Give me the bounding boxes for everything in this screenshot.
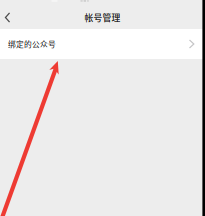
- button[interactable]: 绑定的公众号: [0, 29, 205, 59]
- button[interactable]: Back: [0, 5, 15, 29]
- staticText: 绑定的公众号: [8, 38, 56, 50]
- staticText: 帐号管理: [84, 11, 120, 24]
